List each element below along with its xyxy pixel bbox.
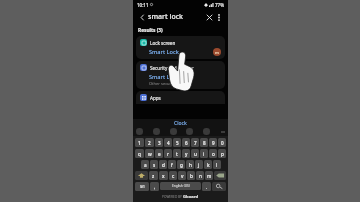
button[interactable]: 0 xyxy=(218,138,226,147)
button[interactable]: a xyxy=(141,160,149,169)
button[interactable]: h xyxy=(186,160,194,169)
staticText: r xyxy=(167,151,169,157)
staticText: 1 xyxy=(138,140,141,146)
staticText: 6 xyxy=(185,140,188,146)
button[interactable]: z xyxy=(149,171,158,180)
staticText: d xyxy=(162,162,165,168)
staticText: x xyxy=(162,173,165,179)
button[interactable]: e xyxy=(155,149,163,158)
staticText: 7 xyxy=(194,140,197,146)
button[interactable]: Search xyxy=(212,182,226,191)
button[interactable]: p xyxy=(218,149,226,158)
staticText: f xyxy=(171,162,173,168)
staticText: 10:11 xyxy=(137,2,149,8)
button[interactable]: b xyxy=(187,171,195,180)
staticText: 4 xyxy=(167,140,170,146)
button[interactable]: v xyxy=(178,171,186,180)
staticText: k xyxy=(207,162,210,168)
staticText: Clock xyxy=(174,120,187,127)
staticText: , xyxy=(154,184,156,190)
staticText: j xyxy=(198,162,200,168)
button[interactable]: Back xyxy=(137,12,147,22)
staticText: v xyxy=(181,173,184,179)
button[interactable]: Toolbar action 3 xyxy=(186,128,193,135)
button[interactable]: m xyxy=(205,171,213,180)
staticText: Smart Lock xyxy=(149,73,179,81)
button[interactable]: r xyxy=(164,149,172,158)
button[interactable]: . xyxy=(202,182,211,191)
staticText: 77% xyxy=(215,2,224,8)
staticText: b xyxy=(190,173,193,179)
button[interactable]: Lock screen xyxy=(136,36,225,59)
button[interactable]: u xyxy=(191,149,199,158)
button[interactable]: More toolbar xyxy=(220,129,225,134)
staticText: e xyxy=(158,151,161,157)
button[interactable]: Shift xyxy=(135,171,148,180)
staticText: g xyxy=(180,162,183,168)
button[interactable]: More options xyxy=(214,12,224,22)
staticText: n xyxy=(199,173,202,179)
button[interactable]: Security and privacy xyxy=(136,61,225,89)
button[interactable]: Toolbar action 4 xyxy=(203,128,210,135)
button[interactable]: 5 xyxy=(173,138,181,147)
button[interactable]: Toolbar action 1 xyxy=(153,128,160,135)
button[interactable]: y xyxy=(182,149,190,158)
staticText: i xyxy=(203,151,205,157)
button[interactable]: smart lock xyxy=(148,12,204,22)
staticText: w xyxy=(148,151,152,157)
staticText: u xyxy=(194,151,197,157)
button[interactable]: 9 xyxy=(209,138,217,147)
staticText: 3 xyxy=(158,140,161,146)
button[interactable]: k xyxy=(204,160,212,169)
button[interactable]: Toolbar action 0 xyxy=(136,128,143,135)
staticText: m xyxy=(207,173,212,179)
button[interactable]: 7 xyxy=(191,138,199,147)
button[interactable]: x xyxy=(159,171,168,180)
staticText: s xyxy=(153,162,156,168)
button[interactable]: o xyxy=(209,149,217,158)
button[interactable]: l xyxy=(213,160,221,169)
button[interactable]: w xyxy=(145,149,154,158)
staticText: 2 xyxy=(148,140,151,146)
button[interactable]: c xyxy=(169,171,177,180)
button[interactable]: 6 xyxy=(182,138,190,147)
button[interactable]: Toolbar action 2 xyxy=(170,128,177,135)
button[interactable]: g xyxy=(177,160,185,169)
staticText: Gboard xyxy=(183,194,199,200)
button[interactable]: i xyxy=(200,149,208,158)
staticText: 8 xyxy=(203,140,206,146)
button[interactable]: t xyxy=(173,149,181,158)
button[interactable]: Backspace xyxy=(214,171,226,180)
staticText: English (US) xyxy=(172,184,190,188)
staticText: q xyxy=(138,151,141,157)
button[interactable]: j xyxy=(195,160,203,169)
button[interactable]: 8 xyxy=(200,138,208,147)
button[interactable]: , xyxy=(150,182,159,191)
button[interactable]: !#1 xyxy=(135,182,149,191)
staticText: Smart Lock xyxy=(149,48,179,56)
staticText: !#1 xyxy=(140,185,145,189)
button[interactable]: f xyxy=(168,160,176,169)
button[interactable]: 4 xyxy=(164,138,172,147)
staticText: . xyxy=(206,184,208,190)
staticText: h xyxy=(189,162,192,168)
staticText: Other security settings xyxy=(149,81,192,86)
button[interactable]: 3 xyxy=(155,138,163,147)
staticText: 0 xyxy=(221,140,224,146)
button[interactable]: n xyxy=(196,171,204,180)
button[interactable]: s xyxy=(150,160,158,169)
button[interactable]: d xyxy=(159,160,167,169)
staticText: p xyxy=(221,151,224,157)
button[interactable]: q xyxy=(135,149,144,158)
staticText: m xyxy=(215,50,219,55)
staticText: Security and privacy xyxy=(150,65,194,71)
button[interactable]: Clear search xyxy=(204,12,214,22)
button[interactable]: Apps xyxy=(136,91,225,104)
button[interactable]: 1 xyxy=(135,138,144,147)
staticText: 9 xyxy=(212,140,215,146)
staticText: a xyxy=(144,162,147,168)
staticText: 5 xyxy=(176,140,179,146)
button[interactable]: 2 xyxy=(145,138,154,147)
staticText: y xyxy=(185,151,188,157)
button[interactable]: English (US) xyxy=(160,182,201,190)
